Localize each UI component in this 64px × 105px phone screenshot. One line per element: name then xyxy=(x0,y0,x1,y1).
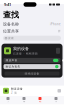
button[interactable]: 搜索 xyxy=(3,36,61,41)
staticText: 我的设备 xyxy=(13,46,29,51)
staticText: 设备 xyxy=(23,101,25,102)
staticText: 位置共享 xyxy=(3,29,19,34)
staticText: 设备名称 xyxy=(3,22,19,27)
button[interactable]: 播放声音 xyxy=(3,58,60,63)
staticText: 查找 xyxy=(3,10,19,20)
staticText: 物品 xyxy=(39,101,41,102)
button[interactable]: 我 xyxy=(48,97,64,102)
staticText: 刚刚更新 xyxy=(26,52,38,55)
button[interactable]: 附近设备 xyxy=(0,86,64,96)
staticText: 抹掉此设备 xyxy=(24,72,39,75)
button[interactable]: 标记为丢失 xyxy=(3,64,60,69)
button[interactable]: 物品 xyxy=(32,97,48,102)
staticText: 播放声音 xyxy=(5,59,17,62)
button[interactable]: 抹掉此设备 xyxy=(4,72,59,76)
staticText: 开 xyxy=(58,30,61,33)
button[interactable]: 设备 xyxy=(56,48,60,54)
staticText: iPhone xyxy=(50,22,61,26)
staticText: 搜索 xyxy=(8,36,14,40)
staticText: 2 项 xyxy=(11,91,17,94)
staticText: 标记为丢失 xyxy=(5,65,20,68)
staticText: 已连接 xyxy=(13,52,22,55)
button[interactable]: 人 xyxy=(0,97,16,102)
staticText: 附近设备 xyxy=(11,87,23,90)
staticText: 9:41 xyxy=(4,2,11,7)
button[interactable]: 设备 xyxy=(16,97,32,102)
